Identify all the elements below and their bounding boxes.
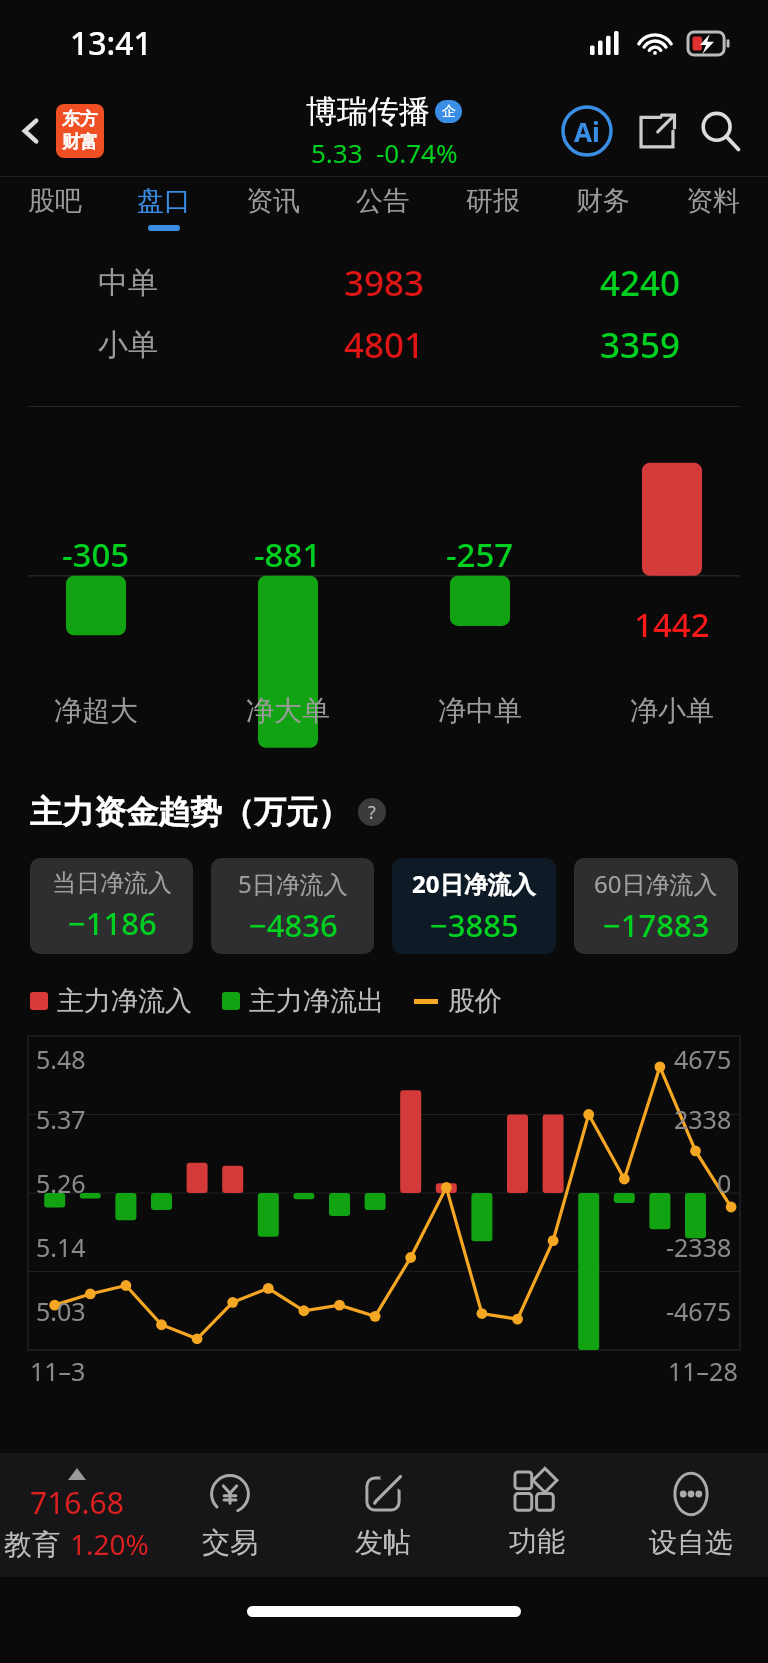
staticText: 净大单: [246, 693, 330, 728]
staticText: Ai: [574, 114, 600, 149]
button[interactable]: 5日净流入: [211, 858, 374, 954]
button[interactable]: 60日净流入: [574, 858, 738, 954]
staticText: ?: [368, 800, 376, 825]
button[interactable]: 716.68: [0, 1453, 153, 1577]
button[interactable]: 财务: [548, 176, 658, 238]
staticText: -2338: [666, 1230, 732, 1264]
button[interactable]: Help: [358, 798, 386, 826]
staticText: 股吧: [28, 184, 82, 218]
staticText: 发帖: [355, 1525, 411, 1560]
staticText: 2338: [674, 1102, 732, 1136]
staticText: 资料: [686, 184, 740, 218]
staticText: 5.48: [36, 1042, 86, 1076]
staticText: -305: [62, 532, 130, 577]
button[interactable]: 研报: [438, 176, 548, 238]
staticText: 股价: [448, 984, 502, 1018]
button[interactable]: 发帖: [306, 1453, 460, 1577]
staticText: -0.74%: [376, 135, 458, 170]
staticText: 716.68: [30, 1482, 124, 1523]
staticText: 5.03: [36, 1294, 86, 1328]
button[interactable]: 功能: [460, 1453, 614, 1577]
staticText: 小单: [98, 326, 158, 364]
staticText: 主力净流入: [57, 984, 192, 1018]
staticText: −1186: [68, 902, 157, 944]
staticText: 5.33: [311, 135, 363, 170]
staticText: 5.37: [36, 1102, 86, 1136]
button[interactable]: 股吧: [0, 176, 109, 238]
staticText: 净小单: [630, 693, 714, 728]
button[interactable]: 公告: [328, 176, 438, 238]
staticText: -4675: [666, 1294, 732, 1328]
staticText: 13:41: [70, 21, 152, 65]
button[interactable]: 当日净流入: [30, 858, 193, 954]
staticText: 1.20%: [70, 1525, 149, 1563]
staticText: 主力净流出: [249, 984, 384, 1018]
staticText: 当日净流入: [52, 868, 172, 898]
staticText: 研报: [466, 184, 520, 218]
staticText: 3359: [600, 321, 681, 369]
button[interactable]: Share: [630, 104, 684, 158]
button[interactable]: 设自选: [614, 1453, 768, 1577]
button[interactable]: 20日净流入: [392, 858, 556, 954]
staticText: 11–3: [30, 1354, 86, 1388]
staticText: 净超大: [54, 693, 138, 728]
button[interactable]: 资讯: [218, 176, 328, 238]
staticText: -257: [446, 532, 514, 577]
staticText: 5.26: [36, 1166, 86, 1200]
button[interactable]: Search: [692, 103, 748, 159]
staticText: 公告: [356, 184, 410, 218]
staticText: 设自选: [649, 1525, 733, 1560]
staticText: 1442: [634, 602, 710, 647]
staticText: −3885: [430, 904, 519, 946]
staticText: −4836: [249, 904, 338, 946]
button[interactable]: AI assistant: [558, 102, 616, 160]
staticText: 5.14: [36, 1230, 86, 1264]
staticText: 0: [717, 1166, 732, 1200]
button[interactable]: Back: [6, 106, 56, 156]
staticText: −17883: [603, 904, 710, 946]
staticText: -881: [254, 532, 322, 577]
staticText: 11–28: [668, 1354, 738, 1388]
staticText: 资讯: [246, 184, 300, 218]
staticText: 财务: [576, 184, 630, 218]
staticText: 博瑞传播: [306, 92, 430, 131]
staticText: 功能: [509, 1524, 565, 1559]
staticText: 财富: [62, 131, 98, 154]
button[interactable]: 盘口: [109, 176, 218, 238]
staticText: 4240: [600, 259, 681, 307]
staticText: 中单: [98, 264, 158, 302]
button[interactable]: 资料: [658, 176, 768, 238]
staticText: 净中单: [438, 693, 522, 728]
button[interactable]: East Money home: [56, 104, 104, 158]
staticText: 盘口: [137, 184, 191, 218]
staticText: 4675: [674, 1042, 732, 1076]
staticText: 主力资金趋势（万元）: [30, 792, 350, 832]
staticText: 20日净流入: [412, 867, 536, 900]
staticText: 60日净流入: [594, 867, 718, 900]
button[interactable]: 交易: [153, 1453, 306, 1577]
staticText: 5日净流入: [238, 867, 348, 900]
staticText: 企: [442, 103, 456, 121]
staticText: 东方: [62, 108, 98, 131]
staticText: 交易: [202, 1525, 258, 1560]
staticText: 教育: [4, 1527, 60, 1562]
staticText: 3983: [344, 259, 425, 307]
staticText: 4801: [344, 321, 425, 369]
